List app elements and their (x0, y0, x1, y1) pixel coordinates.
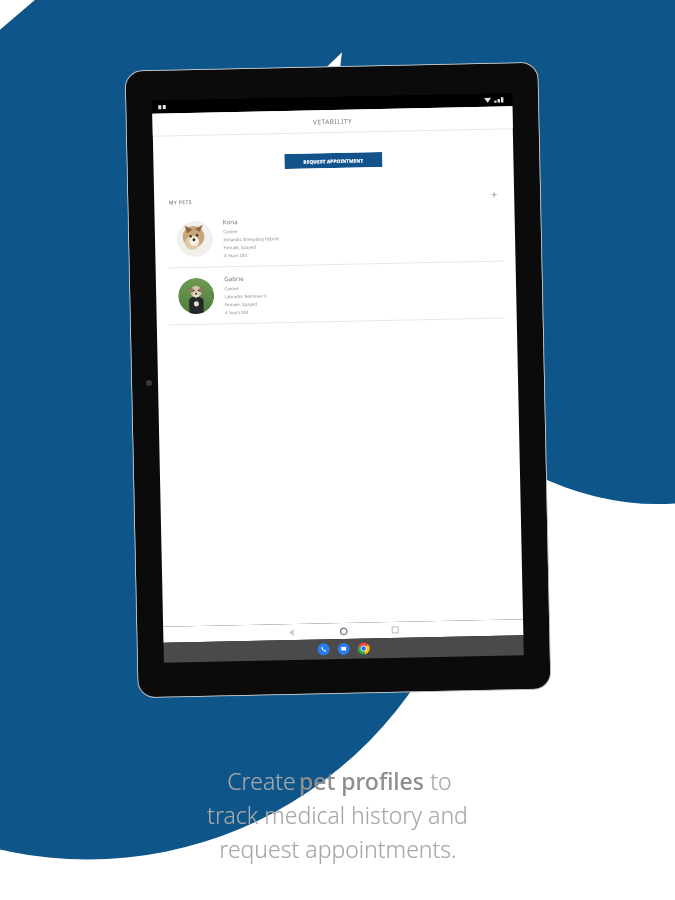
staticText: VETABILITY (312, 117, 353, 126)
staticText: 4 Years Old (224, 309, 249, 315)
button[interactable]: Home (330, 623, 356, 639)
staticText: Canine (224, 285, 239, 291)
staticText: REQUEST APPOINTMENT (303, 157, 363, 165)
staticText: request appointments. (219, 833, 457, 864)
staticText: track medical history and (207, 799, 468, 830)
staticText: 4 Years Old (223, 252, 247, 258)
staticText: MY PETS (168, 198, 192, 205)
button[interactable]: REQUEST APPOINTMENT (284, 152, 383, 169)
button[interactable]: Gabrie (156, 261, 517, 325)
button[interactable]: Chrome (356, 641, 371, 656)
staticText: Labrador Retriever X (224, 292, 267, 299)
button[interactable]: Kona (154, 204, 515, 268)
staticText: Kona (223, 217, 238, 225)
staticText: Female, Spayed (223, 244, 256, 250)
staticText: Female, Spayed (224, 301, 257, 307)
staticText: Gabrie (224, 274, 244, 282)
staticText: Icelandic Sheepdog Hybrid (223, 235, 279, 242)
button[interactable]: Back (278, 624, 304, 640)
button[interactable]: Add pet (488, 189, 500, 201)
staticText: Canine (223, 228, 238, 234)
button[interactable]: Recent apps (382, 622, 408, 638)
button[interactable]: Phone (316, 642, 331, 656)
staticText: Create (224, 765, 299, 796)
button[interactable]: Messages (336, 642, 351, 656)
staticText: pet profiles (299, 765, 424, 796)
staticText: to (424, 765, 452, 796)
